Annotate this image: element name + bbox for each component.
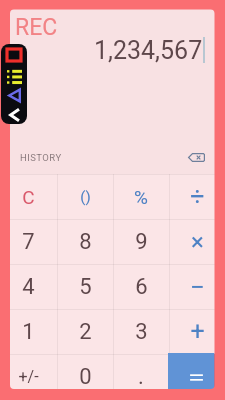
staticText: ÷ [190, 182, 205, 211]
staticText: () [80, 188, 91, 206]
staticText: % [134, 186, 148, 208]
staticText: 2 [79, 319, 92, 345]
staticText: 4 [22, 274, 35, 300]
button[interactable]: − [169, 264, 225, 309]
staticText: REC [15, 14, 58, 41]
button[interactable]: 3 [113, 309, 169, 354]
button[interactable]: +/- [0, 354, 57, 399]
staticText: − [190, 272, 205, 302]
staticText: 3 [135, 319, 148, 345]
button[interactable]: Recordings list [1, 66, 27, 86]
staticText: 5 [79, 274, 92, 300]
staticText: 8 [79, 229, 92, 255]
staticText: C [22, 186, 35, 208]
button[interactable]: 7 [0, 219, 57, 264]
button[interactable]: 1 [0, 309, 57, 354]
button[interactable]: 6 [113, 264, 169, 309]
button[interactable]: 2 [57, 309, 113, 354]
staticText: 6 [135, 274, 148, 300]
button[interactable]: Backspace [177, 142, 215, 172]
button[interactable]: × [169, 219, 225, 264]
staticText: 7 [22, 229, 35, 255]
button[interactable]: + [169, 309, 225, 354]
button[interactable]: () [57, 174, 113, 219]
button[interactable]: 0 [57, 354, 113, 399]
staticText: +/- [18, 367, 39, 386]
staticText: 1 [22, 319, 35, 345]
button[interactable]: Play [1, 86, 27, 105]
staticText: 0 [79, 364, 92, 390]
staticText: × [191, 228, 204, 256]
button[interactable]: Equals [168, 354, 225, 400]
button[interactable]: 5 [57, 264, 113, 309]
button[interactable]: . [113, 354, 169, 399]
button[interactable]: 4 [0, 264, 57, 309]
button[interactable] [169, 354, 225, 399]
button[interactable]: 8 [57, 219, 113, 264]
button[interactable]: Back [1, 105, 27, 124]
button[interactable]: C [0, 174, 57, 219]
staticText: + [190, 317, 205, 346]
button[interactable]: Stop recording [1, 44, 27, 66]
button[interactable]: ÷ [169, 174, 225, 219]
button[interactable]: % [113, 174, 169, 219]
staticText: 9 [135, 229, 148, 255]
button[interactable]: 9 [113, 219, 169, 264]
staticText: 1,234,567 [94, 36, 203, 65]
staticText: HISTORY [20, 152, 62, 163]
staticText: . [138, 364, 144, 390]
